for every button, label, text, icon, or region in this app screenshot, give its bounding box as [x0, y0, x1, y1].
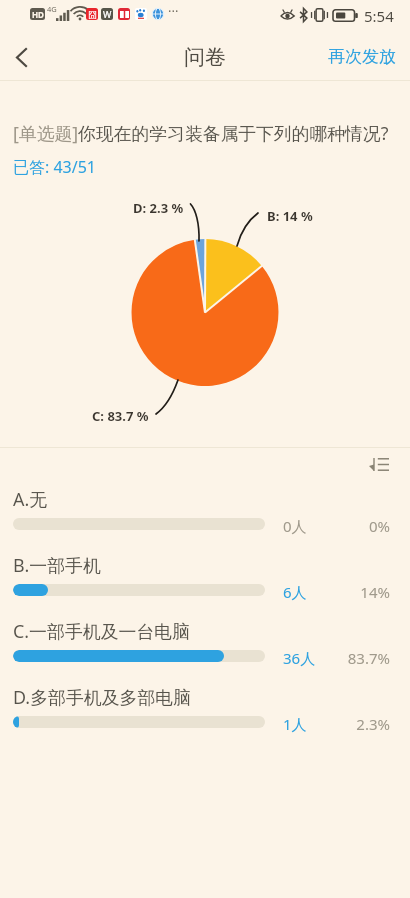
- staticText: 83.7%: [320, 648, 390, 668]
- staticText: 囧: [88, 9, 97, 20]
- button[interactable]: A.无: [0, 490, 410, 546]
- staticText: D: 2.3 %: [133, 199, 184, 217]
- staticText: 问卷: [184, 44, 226, 70]
- staticText: C.一部手机及一台电脑: [13, 619, 191, 643]
- button[interactable]: D.多部手机及多部电脑: [0, 688, 410, 744]
- staticText: B: 14 %: [267, 207, 313, 225]
- staticText: 1人: [283, 714, 307, 734]
- staticText: 14%: [320, 582, 390, 602]
- staticText: C: 83.7 %: [92, 407, 149, 425]
- staticText: ···: [168, 2, 179, 20]
- staticText: 0%: [320, 516, 390, 536]
- button[interactable]: Sort: [363, 450, 395, 478]
- staticText: D.多部手机及多部电脑: [13, 685, 192, 709]
- staticText: 4G: [47, 4, 57, 14]
- staticText: 6人: [283, 582, 307, 602]
- staticText: W: [103, 8, 112, 20]
- staticText: 5:54: [364, 6, 394, 26]
- staticText: 36人: [283, 648, 316, 668]
- staticText: 0人: [283, 516, 307, 536]
- button[interactable]: C.一部手机及一台电脑: [0, 622, 410, 678]
- button[interactable]: Back: [0, 31, 42, 80]
- staticText: 2.3%: [320, 714, 390, 734]
- staticText: B.一部手机: [13, 553, 101, 577]
- staticText: 已答: 43/51: [13, 156, 97, 178]
- staticText: A.无: [13, 487, 48, 511]
- button[interactable]: 再次发放: [312, 31, 410, 80]
- staticText: [单选题]你现在的学习装备属于下列的哪种情况?: [13, 121, 389, 145]
- button[interactable]: B.一部手机: [0, 556, 410, 612]
- staticText: 再次发放: [328, 46, 396, 67]
- staticText: HD: [32, 9, 44, 20]
